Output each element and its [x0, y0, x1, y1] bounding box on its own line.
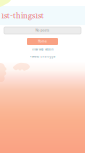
staticText: Home: [38, 40, 47, 43]
staticText: 1st-things1st: [1, 11, 44, 21]
staticText: Powered by Blogger: [29, 55, 55, 58]
staticText: No posts: [35, 29, 49, 32]
staticText: View web version: [32, 48, 53, 51]
button[interactable]: Home: [27, 38, 58, 45]
button[interactable]: View web version: [32, 48, 53, 51]
